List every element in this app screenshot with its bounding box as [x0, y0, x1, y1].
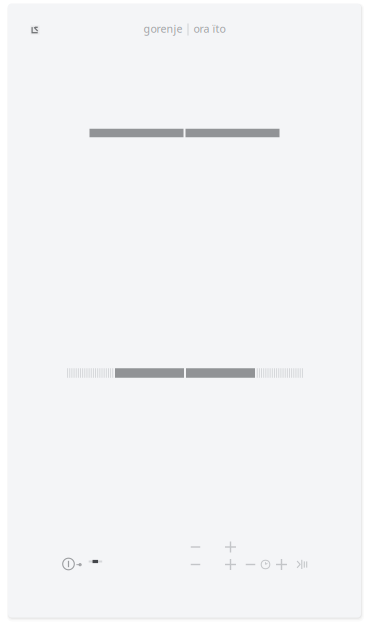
- button[interactable]: Increase timer: [272, 555, 290, 573]
- staticText: gorenje: [144, 21, 183, 36]
- button[interactable]: Child lock: [72, 557, 86, 573]
- staticText: ora ïto: [193, 21, 225, 36]
- button[interactable]: Power boost: [293, 555, 311, 573]
- button[interactable]: Decrease zone two: [185, 555, 205, 573]
- button[interactable]: Decrease zone one: [185, 538, 205, 556]
- button[interactable]: Power: [57, 553, 79, 575]
- button[interactable]: Increase zone two: [220, 555, 240, 573]
- button[interactable]: Slider: [89, 553, 105, 569]
- button[interactable]: Increase zone one: [220, 538, 240, 556]
- button[interactable]: Decrease timer: [241, 555, 259, 573]
- button[interactable]: Timer: [256, 555, 274, 573]
